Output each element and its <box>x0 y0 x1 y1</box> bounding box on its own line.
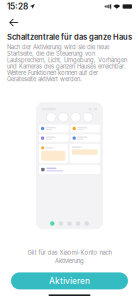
staticText: Startseite, die die Steuerung von <box>7 50 95 57</box>
button[interactable]: Aktivieren <box>11 272 128 289</box>
staticText: Gilt für das Xiaomi-Konto nach <box>27 249 111 256</box>
staticText: und Kameras des ganzen Hauses erreichbar… <box>7 63 126 70</box>
staticText: Nach der Aktivierung wird sie die neue <box>7 44 109 51</box>
button[interactable]: Zurück <box>3 13 25 31</box>
staticText: Lautsprechern, Licht, Umgebung, Vorhänge… <box>7 56 127 64</box>
staticText: Schaltzentrale für das ganze Haus <box>7 32 132 42</box>
staticText: Aktivieren <box>49 276 90 286</box>
staticText: Geräteseite aktiviert werden. <box>7 76 82 83</box>
staticText: 15:28 <box>7 1 28 11</box>
staticText: Aktivierung <box>55 257 84 264</box>
staticText: Weitere Funktionen können auf der <box>7 69 98 76</box>
